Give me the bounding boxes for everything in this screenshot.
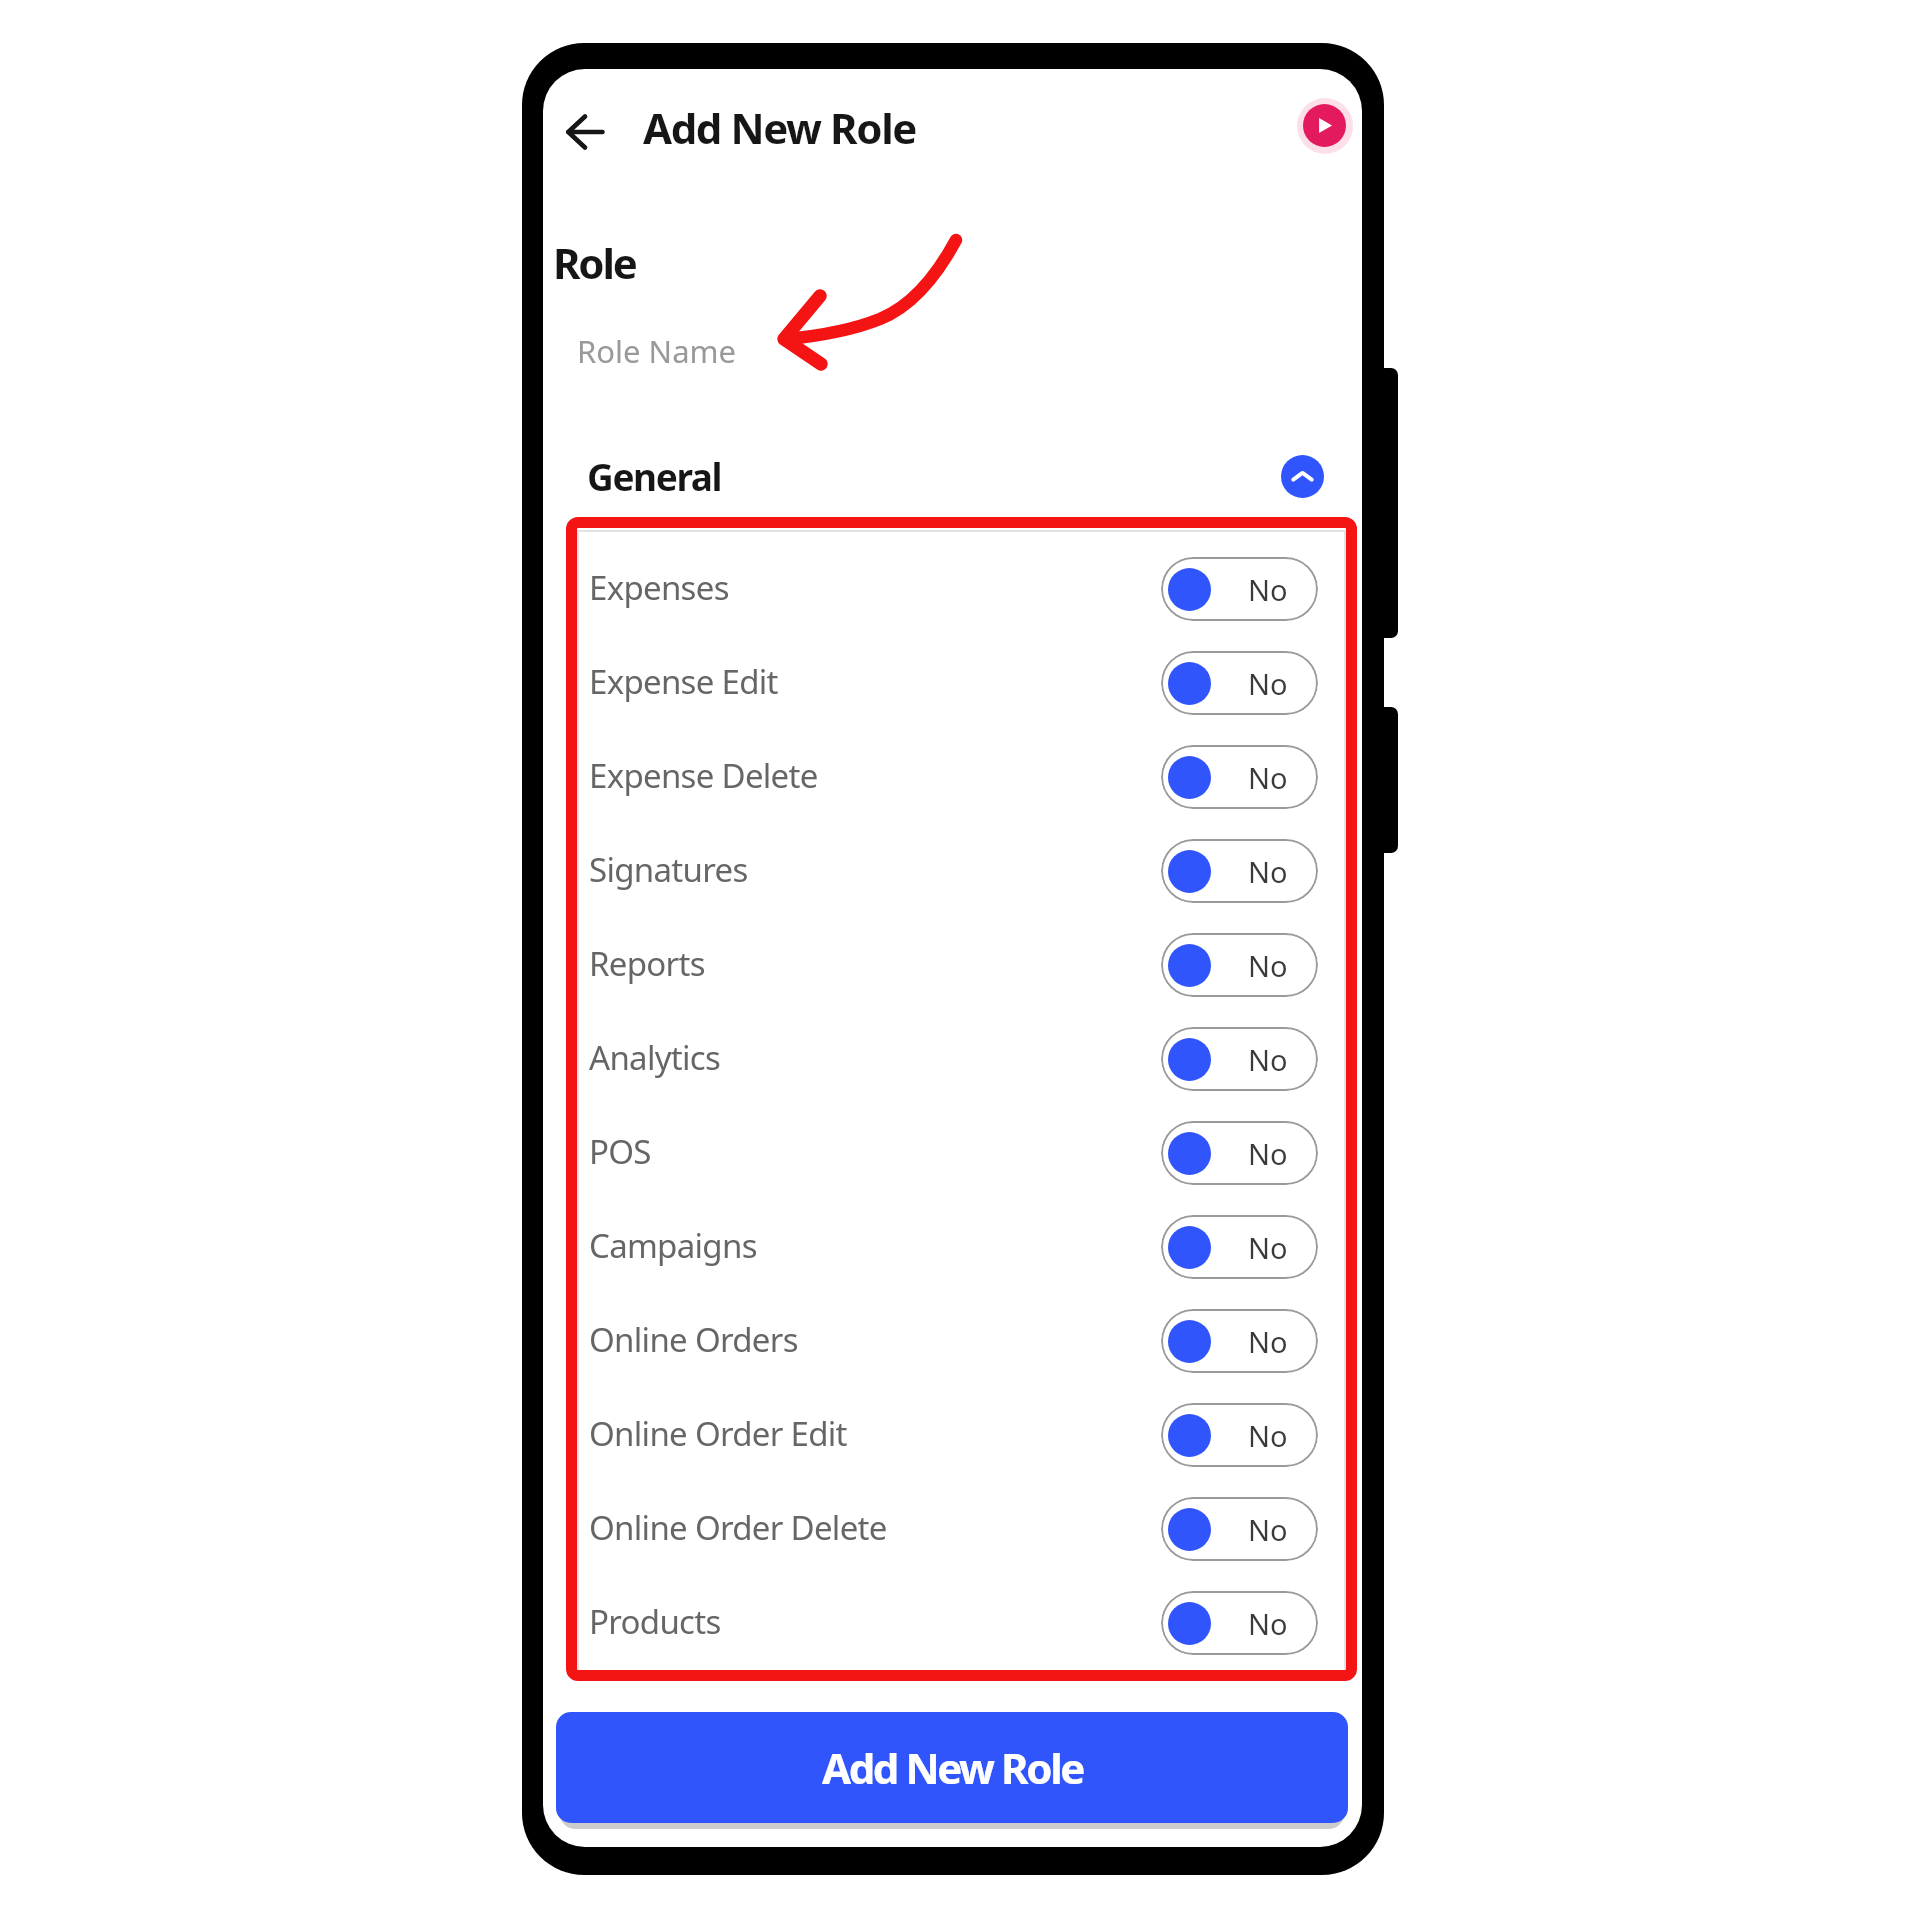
staticText: Signatures: [589, 847, 748, 892]
button[interactable]: No: [1161, 839, 1318, 903]
staticText: No: [1248, 570, 1288, 609]
button[interactable]: No: [1161, 1497, 1318, 1561]
button[interactable]: No: [1161, 1215, 1318, 1279]
button[interactable]: No: [1161, 651, 1318, 715]
button[interactable]: General: [587, 450, 1324, 502]
staticText: No: [1248, 1604, 1288, 1643]
button[interactable]: Online Orders: [577, 1294, 1346, 1388]
button[interactable]: No: [1161, 1403, 1318, 1467]
staticText: Campaigns: [589, 1223, 757, 1268]
staticText: Expenses: [589, 565, 729, 610]
staticText: No: [1248, 1322, 1288, 1361]
button[interactable]: Online Order Delete: [577, 1482, 1346, 1576]
staticText: Role Name: [577, 330, 736, 372]
staticText: No: [1248, 758, 1288, 797]
staticText: No: [1248, 852, 1288, 891]
staticText: Analytics: [589, 1035, 721, 1080]
staticText: No: [1248, 946, 1288, 985]
button[interactable]: Back: [557, 104, 613, 160]
staticText: No: [1248, 1510, 1288, 1549]
button[interactable]: Online Order Edit: [577, 1388, 1346, 1482]
staticText: POS: [589, 1129, 651, 1174]
button[interactable]: Products: [577, 1576, 1346, 1670]
button[interactable]: Campaigns: [577, 1200, 1346, 1294]
button[interactable]: POS: [577, 1106, 1346, 1200]
button[interactable]: Reports: [577, 918, 1346, 1012]
staticText: No: [1248, 664, 1288, 703]
staticText: Role: [553, 234, 636, 291]
staticText: Add New Role: [643, 99, 916, 156]
button[interactable]: No: [1161, 557, 1318, 621]
button[interactable]: Signatures: [577, 824, 1346, 918]
button[interactable]: Expense Edit: [577, 636, 1346, 730]
button[interactable]: No: [1161, 745, 1318, 809]
staticText: Online Orders: [589, 1317, 798, 1362]
button[interactable]: No: [1161, 1591, 1318, 1655]
button[interactable]: No: [1161, 1309, 1318, 1373]
staticText: Reports: [589, 941, 705, 986]
staticText: Add New Role: [822, 1739, 1083, 1796]
staticText: Products: [589, 1599, 721, 1644]
staticText: No: [1248, 1416, 1288, 1455]
button[interactable]: No: [1161, 1027, 1318, 1091]
button[interactable]: Expenses: [577, 542, 1346, 636]
staticText: Expense Delete: [589, 753, 818, 798]
staticText: No: [1248, 1134, 1288, 1173]
button[interactable]: Expense Delete: [577, 730, 1346, 824]
staticText: Online Order Edit: [589, 1411, 847, 1456]
button[interactable]: Analytics: [577, 1012, 1346, 1106]
staticText: General: [587, 451, 722, 501]
button[interactable]: No: [1161, 933, 1318, 997]
staticText: Expense Edit: [589, 659, 778, 704]
staticText: Online Order Delete: [589, 1505, 887, 1550]
staticText: No: [1248, 1040, 1288, 1079]
staticText: No: [1248, 1228, 1288, 1267]
button[interactable]: Add New Role: [556, 1712, 1348, 1823]
button[interactable]: Screen recorder: [1303, 104, 1346, 147]
button[interactable]: No: [1161, 1121, 1318, 1185]
